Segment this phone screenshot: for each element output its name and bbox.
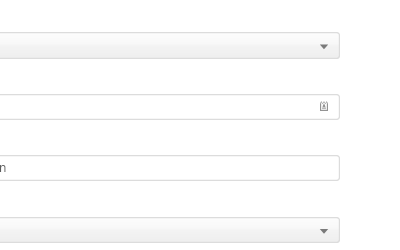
button[interactable]: Select category — [0, 32, 340, 59]
staticText: n — [0, 159, 7, 175]
button[interactable]: Text field — [0, 155, 340, 181]
button[interactable]: Text field — [0, 94, 340, 120]
button[interactable]: Select type — [0, 217, 340, 243]
button[interactable]: Pick contact — [320, 101, 328, 111]
